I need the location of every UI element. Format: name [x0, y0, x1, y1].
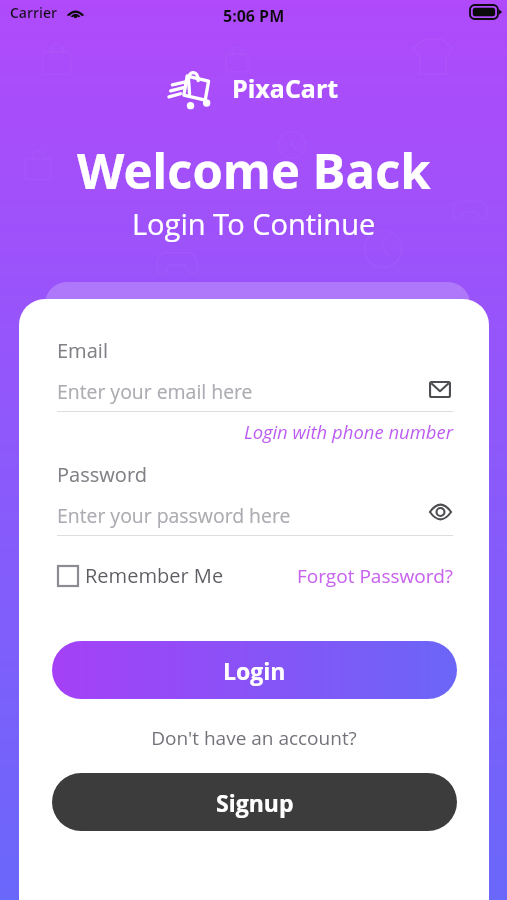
staticText: Carrier	[10, 3, 58, 22]
staticText: Forgot Password?	[297, 563, 453, 589]
staticText: PixaCart	[232, 71, 339, 105]
button[interactable]: Email	[427, 380, 453, 402]
staticText: Welcome Back	[77, 137, 431, 204]
staticText: Don't have an account?	[19, 725, 489, 751]
staticText: Login To Continue	[132, 204, 376, 243]
staticText: 5:06 PM	[223, 5, 285, 27]
staticText: Password	[57, 461, 147, 488]
staticText: Login	[223, 655, 286, 686]
button[interactable]: Signup	[52, 773, 457, 831]
button[interactable]: Show password	[427, 504, 453, 526]
staticText: Login with phone number	[57, 419, 453, 444]
button[interactable]: Remember Me	[57, 562, 224, 589]
button[interactable]: Login with phone number	[57, 419, 453, 444]
staticText: Enter your email here	[57, 378, 427, 404]
staticText: Email	[57, 337, 108, 364]
staticText: Signup	[216, 787, 294, 818]
staticText: Enter your password here	[57, 502, 427, 528]
button[interactable]: Login	[52, 641, 457, 699]
staticText: Remember Me	[85, 562, 224, 589]
button[interactable]: Forgot Password?	[297, 563, 453, 589]
